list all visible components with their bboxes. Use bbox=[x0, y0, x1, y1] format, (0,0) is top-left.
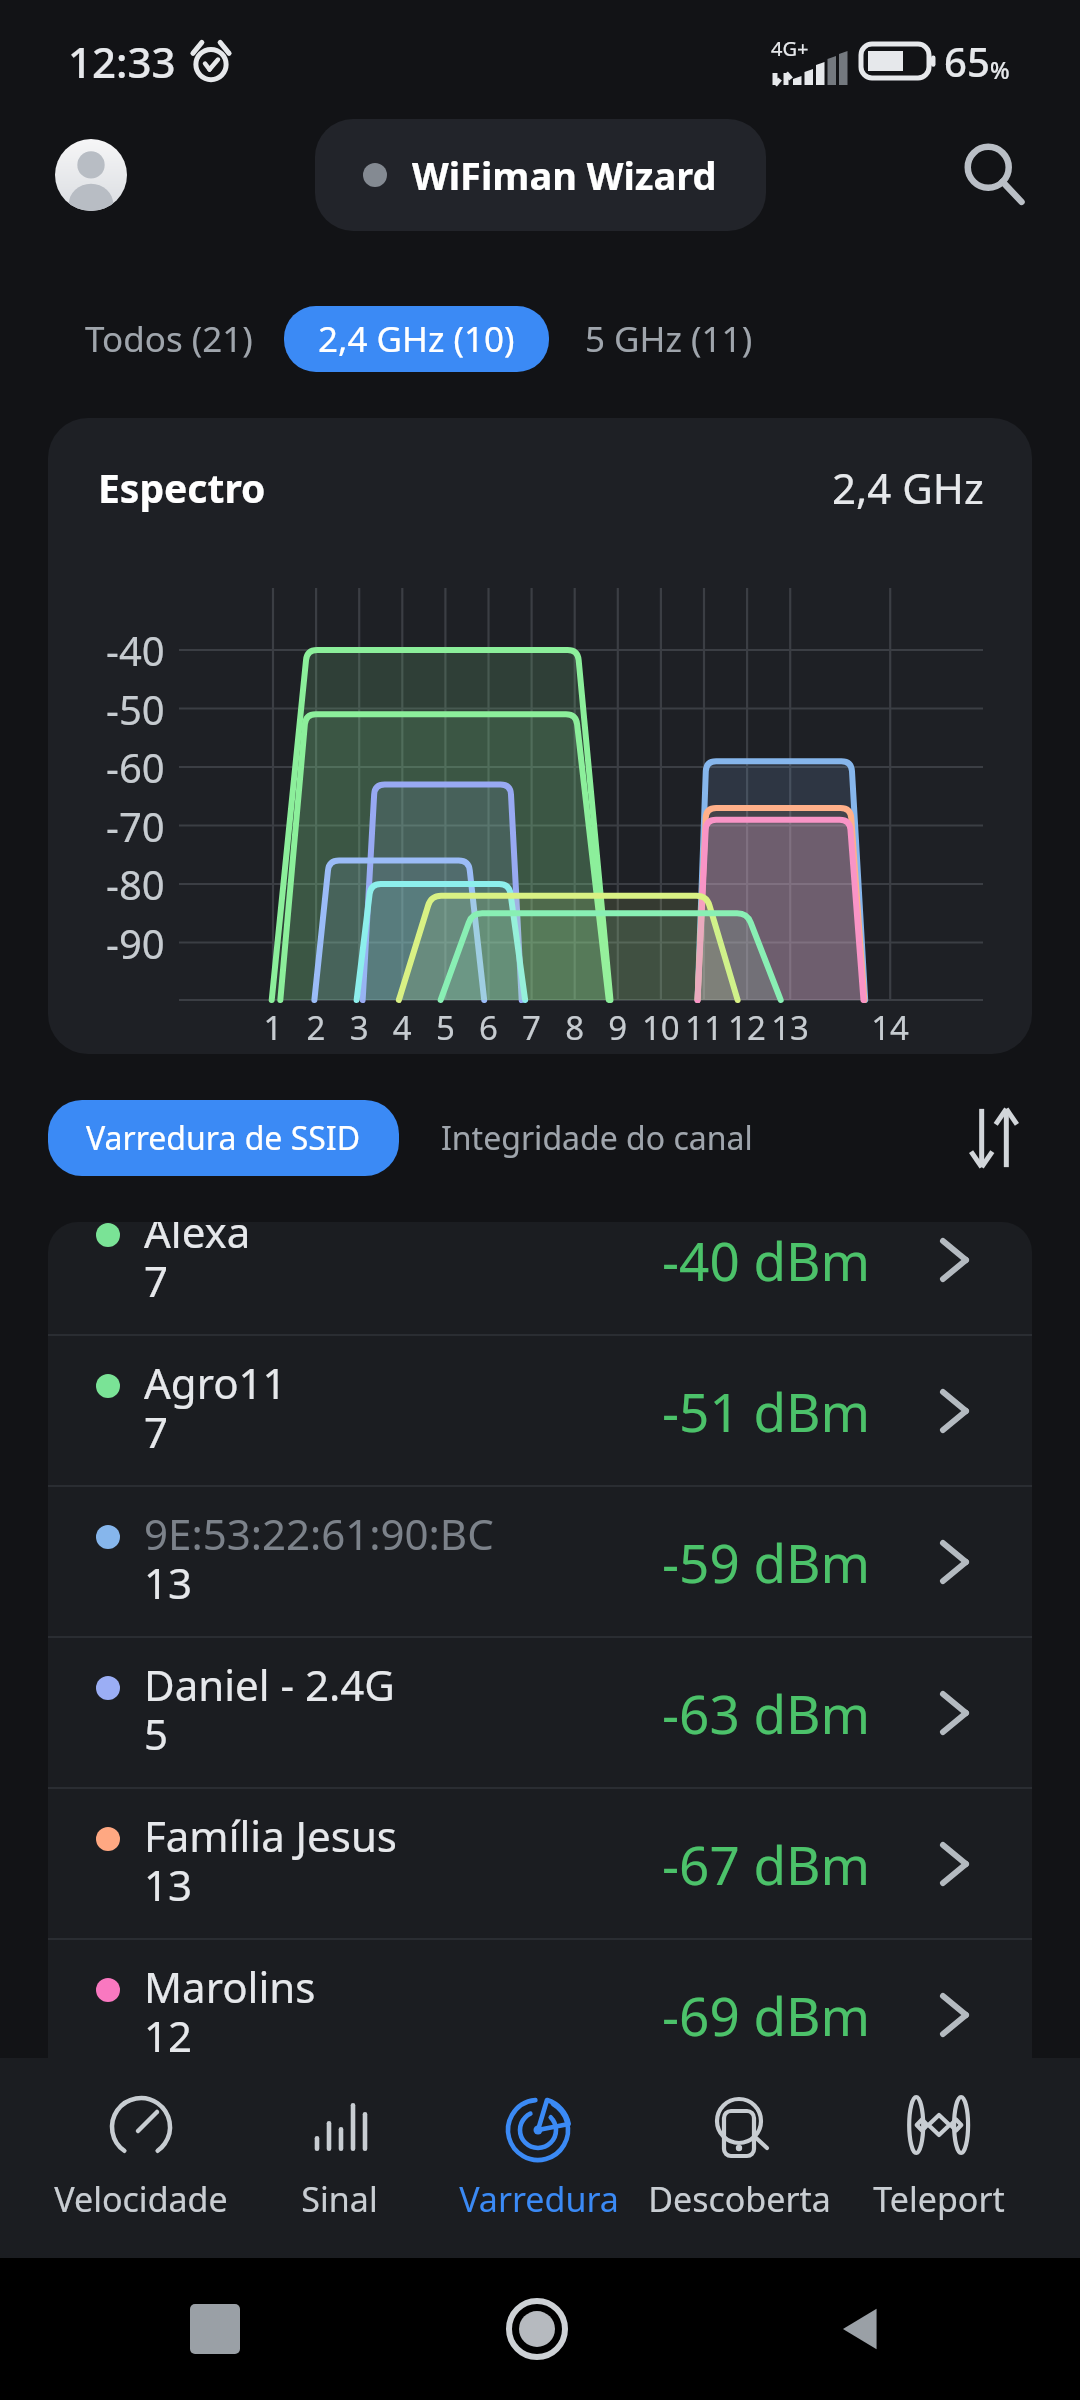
staticText: 5 bbox=[144, 1705, 169, 1762]
button[interactable]: Sinal bbox=[240, 2072, 439, 2244]
button[interactable]: Varredura de SSID bbox=[48, 1100, 399, 1176]
button[interactable]: Família Jesus bbox=[48, 1789, 1032, 1938]
button[interactable]: Marolins bbox=[48, 1940, 1032, 2058]
staticText: -40 dBm bbox=[662, 1224, 871, 1296]
staticText: % bbox=[990, 54, 1010, 85]
staticText: 9E:53:22:61:90:BC bbox=[144, 1505, 494, 1562]
staticText: -67 dBm bbox=[662, 1828, 871, 1900]
button[interactable]: Recents bbox=[190, 2304, 240, 2354]
staticText: Espectro bbox=[98, 461, 266, 514]
staticText: -69 dBm bbox=[662, 1979, 871, 2051]
button[interactable]: Home bbox=[506, 2298, 568, 2360]
button[interactable]: Integridade do canal bbox=[441, 1100, 753, 1176]
button[interactable]: Agro11 bbox=[48, 1336, 1032, 1485]
button[interactable]: WiFiman Wizard bbox=[315, 119, 766, 231]
button[interactable]: Descoberta bbox=[639, 2072, 839, 2244]
staticText: -63 dBm bbox=[662, 1677, 871, 1749]
staticText: Marolins bbox=[144, 1958, 316, 2015]
staticText: Velocidade bbox=[54, 2176, 228, 2222]
staticText: Daniel - 2.4G bbox=[144, 1656, 395, 1713]
staticText: Varredura de SSID bbox=[86, 1116, 361, 1160]
staticText: 12:33 bbox=[68, 33, 176, 90]
staticText: Sinal bbox=[301, 2176, 378, 2222]
staticText: 7 bbox=[144, 1252, 169, 1309]
staticText: Teleport bbox=[873, 2176, 1005, 2222]
staticText: Agro11 bbox=[144, 1354, 287, 1411]
staticText: 7 bbox=[144, 1403, 169, 1460]
button[interactable]: Profile bbox=[55, 139, 127, 211]
button[interactable]: Sort bbox=[956, 1100, 1032, 1176]
button[interactable]: 2,4 GHz (10) bbox=[284, 306, 549, 372]
staticText: WiFiman Wizard bbox=[412, 149, 717, 201]
button[interactable]: Todos (21) bbox=[85, 299, 253, 379]
button[interactable]: Daniel - 2.4G bbox=[48, 1638, 1032, 1787]
button[interactable]: Alexa bbox=[48, 1222, 1032, 1334]
staticText: Alexa bbox=[144, 1222, 251, 1260]
staticText: 13 bbox=[144, 1856, 193, 1913]
staticText: 2,4 GHz bbox=[832, 459, 984, 516]
staticText: 12 bbox=[144, 2007, 193, 2058]
staticText: Descoberta bbox=[648, 2176, 831, 2222]
staticText: 2,4 GHz (10) bbox=[318, 315, 515, 363]
button[interactable]: Varredura bbox=[439, 2072, 639, 2244]
staticText: -51 dBm bbox=[662, 1375, 871, 1447]
staticText: 4G+ bbox=[771, 35, 809, 62]
staticText: Integridade do canal bbox=[441, 1116, 753, 1160]
button[interactable]: 9E:53:22:61:90:BC bbox=[48, 1487, 1032, 1636]
staticText: Todos (21) bbox=[85, 315, 253, 363]
staticText: 5 GHz (11) bbox=[585, 315, 753, 363]
button[interactable]: Velocidade bbox=[41, 2072, 240, 2244]
button[interactable]: Teleport bbox=[839, 2072, 1039, 2244]
staticText: -59 dBm bbox=[662, 1526, 871, 1598]
staticText: Varredura bbox=[459, 2176, 619, 2222]
staticText: 13 bbox=[144, 1554, 193, 1611]
button[interactable]: 5 GHz (11) bbox=[585, 299, 753, 379]
staticText: 65 bbox=[944, 34, 990, 88]
button[interactable]: Search bbox=[950, 131, 1038, 219]
staticText: Família Jesus bbox=[144, 1807, 397, 1864]
button[interactable]: Back bbox=[834, 2301, 890, 2357]
